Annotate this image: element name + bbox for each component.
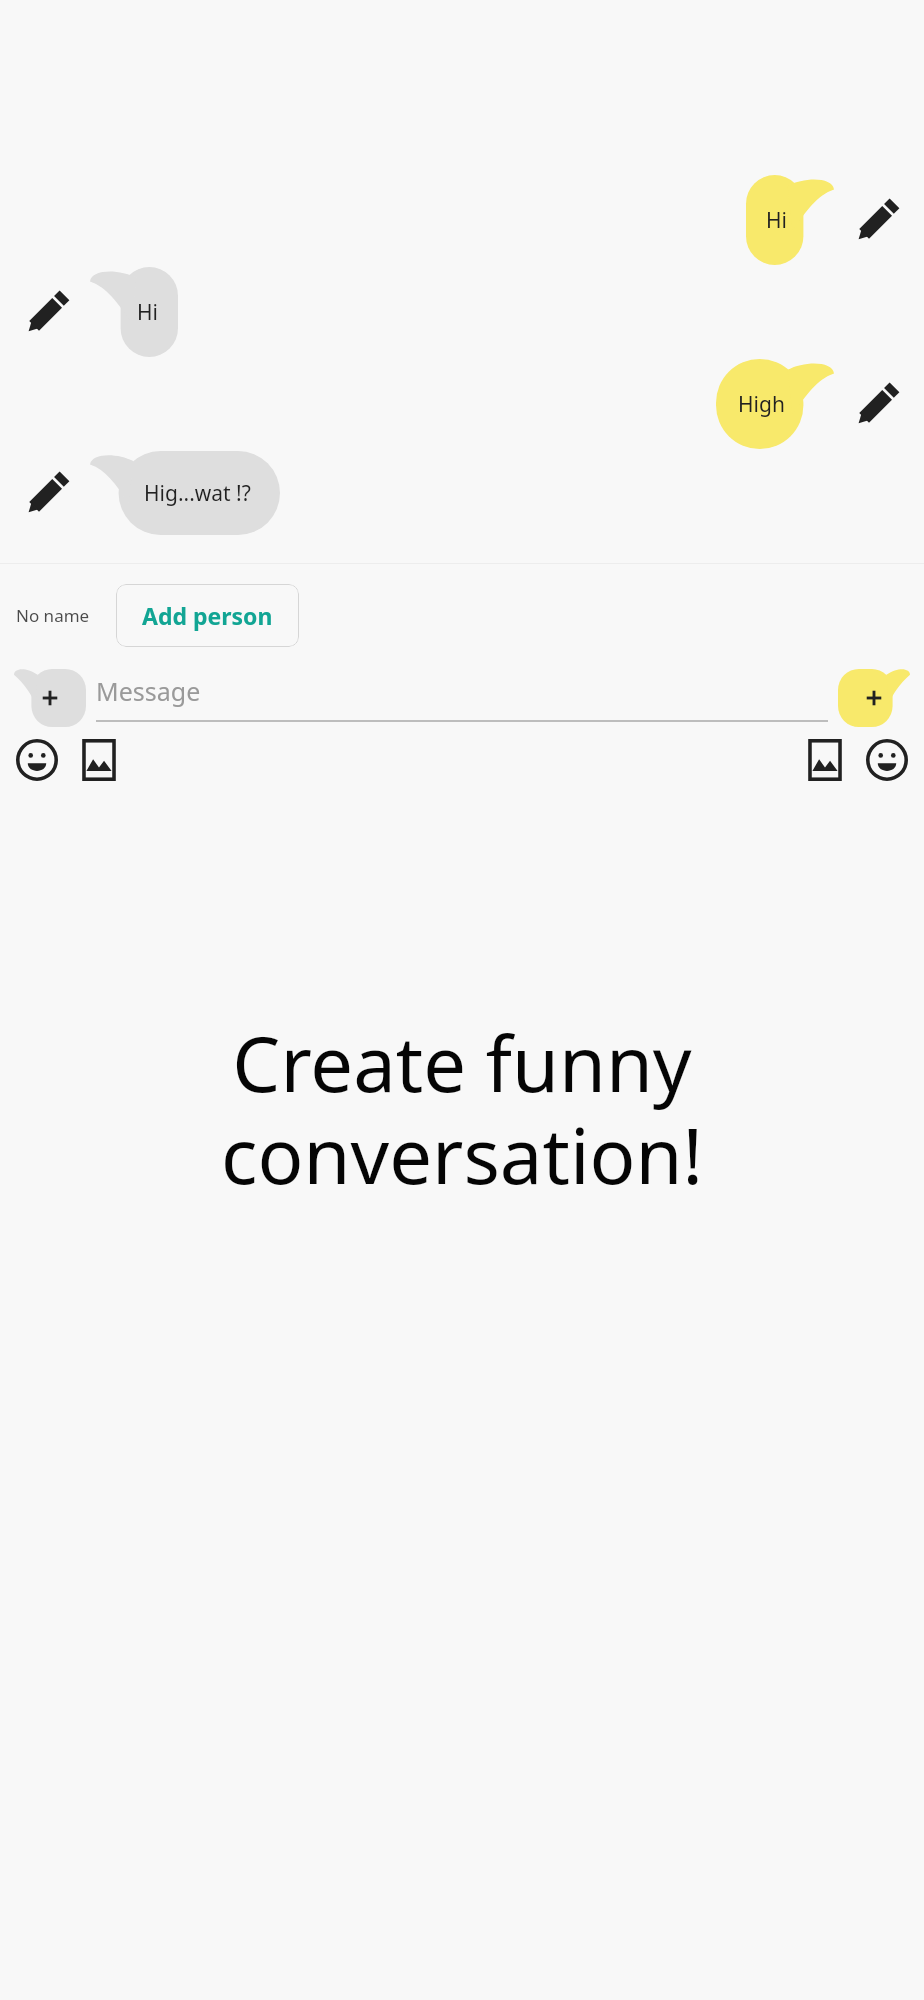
button[interactable]: Hig...wat !? [90,451,280,535]
staticText: Hi [766,206,787,235]
button[interactable]: Emoji [16,739,58,781]
button[interactable]: Edit message [24,289,70,335]
button[interactable]: Edit message [24,470,70,516]
button[interactable]: Add right [838,669,910,727]
button[interactable]: Edit message [854,381,900,427]
staticText: High [738,390,785,419]
staticText: Create funny conversation! [0,1011,924,1206]
staticText: Add person [142,600,273,631]
button[interactable]: Image [78,739,120,781]
button[interactable]: Edit message [854,197,900,243]
staticText: No name [16,604,90,627]
staticText: Hi [137,298,158,327]
staticText: Hig...wat !? [144,479,251,508]
button[interactable]: High [716,359,834,449]
button[interactable]: Add person [116,584,299,647]
button[interactable]: Image [804,739,846,781]
button[interactable]: Emoji [866,739,908,781]
button[interactable]: Hi [746,175,834,265]
button[interactable]: Add left [14,669,86,727]
button[interactable]: Hi [90,267,178,357]
staticText: Message [96,674,201,708]
